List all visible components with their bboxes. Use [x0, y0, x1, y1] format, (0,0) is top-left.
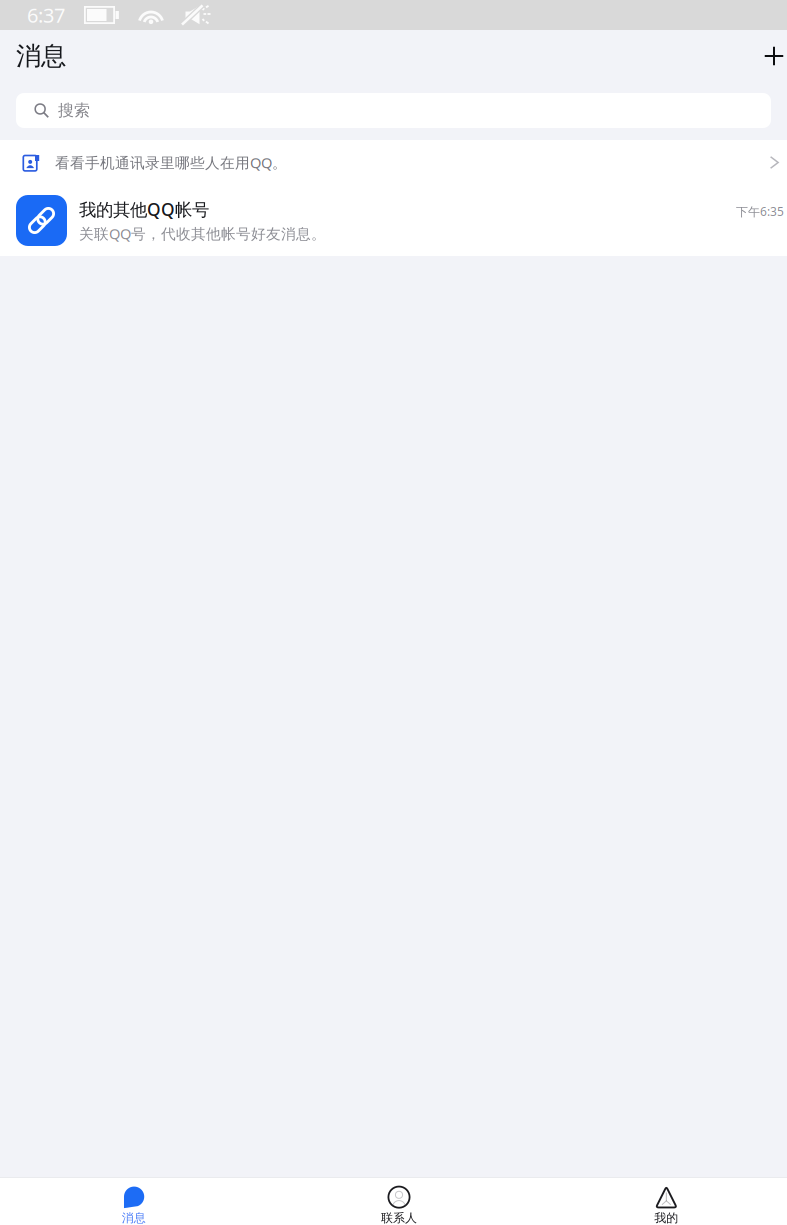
staticText: 消息 [122, 1211, 146, 1225]
staticText: 消息 [16, 40, 66, 71]
staticText: 联系人 [381, 1211, 417, 1225]
staticText: 6:37 [27, 2, 65, 28]
button[interactable]: 消息 [0, 1178, 262, 1225]
staticText: 看看手机通讯录里哪些人在用QQ。 [55, 153, 287, 172]
button[interactable]: 新建 [752, 34, 787, 78]
staticText: 我的 [654, 1211, 678, 1225]
staticText: 搜索 [58, 101, 90, 120]
button[interactable]: 看看手机通讯录里哪些人在用QQ。 [0, 140, 787, 185]
staticText: 关联QQ号，代收其他帐号好友消息。 [79, 224, 326, 243]
button[interactable]: 搜索 [16, 93, 771, 128]
button[interactable]: 联系人 [262, 1178, 525, 1225]
staticText: 我的其他QQ帐号 [79, 198, 209, 221]
staticText: 下午6:35 [736, 203, 784, 219]
button[interactable]: 我的 [525, 1178, 787, 1225]
button[interactable]: 我的其他QQ帐号 [0, 185, 787, 256]
